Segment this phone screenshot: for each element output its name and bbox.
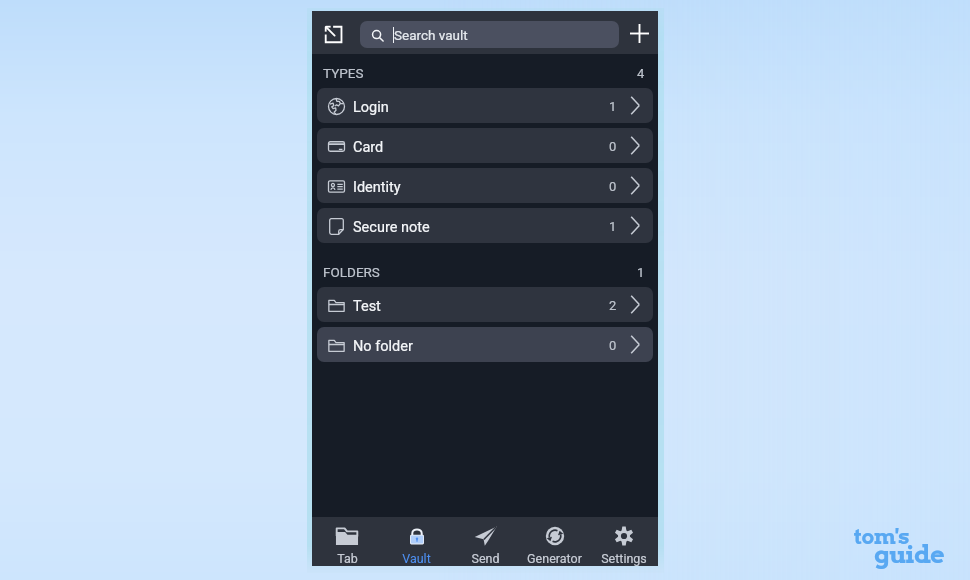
staticText: Settings [601,551,647,566]
staticText: Identity [353,179,401,196]
staticText: Secure note [353,219,430,236]
staticText: 1 [637,265,645,280]
staticText: Login [353,99,389,116]
staticText: TYPES [323,65,364,81]
button[interactable]: Tab [312,517,382,566]
staticText: 2 [609,298,617,313]
staticText: No folder [353,338,413,355]
button[interactable]: Test [317,287,653,322]
button[interactable]: Send [451,517,520,566]
staticText: FOLDERS [323,264,380,280]
button[interactable]: Secure note [317,208,653,243]
button[interactable]: Identity [317,168,653,203]
button[interactable]: Settings [589,517,658,566]
staticText: 0 [609,139,617,154]
staticText: tom's [854,524,909,549]
staticText: Test [353,298,381,315]
staticText: Card [353,139,384,156]
staticText: Tab [337,551,358,566]
staticText: 0 [609,179,617,194]
staticText: 1 [609,99,617,114]
button[interactable]: Collapse [316,17,350,51]
button[interactable]: No folder [317,327,653,362]
button[interactable]: Generator [520,517,589,566]
staticText: guide [874,539,944,569]
staticText: Vault [402,551,431,566]
staticText: 1 [609,219,617,234]
staticText: 4 [637,66,645,81]
button[interactable]: Login [317,88,653,123]
button[interactable]: Search vault [360,21,619,48]
button[interactable]: Add item [622,16,656,50]
button[interactable]: Vault [382,517,451,566]
staticText: 0 [609,338,617,353]
staticText: Send [471,551,500,566]
button[interactable]: Card [317,128,653,163]
staticText: Search vault [394,27,468,43]
staticText: Generator [527,551,582,566]
